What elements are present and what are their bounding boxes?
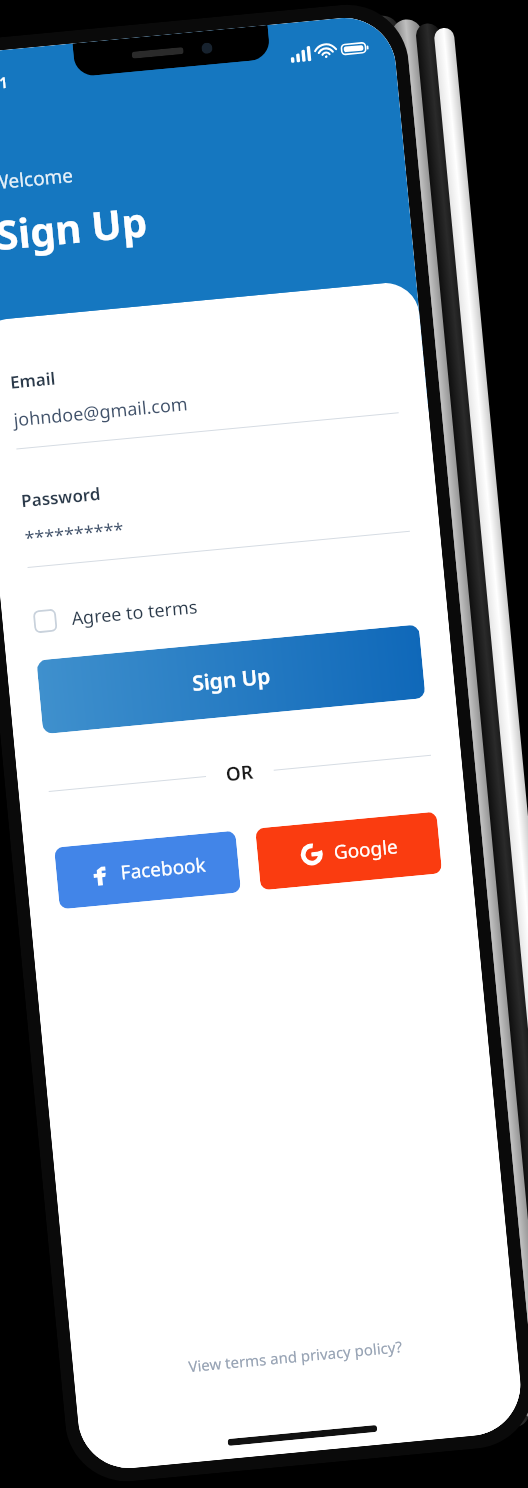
button[interactable]: View terms and privacy policy? [103, 1328, 495, 1470]
staticText: Agree to terms [70, 594, 199, 631]
staticText: Facebook [119, 851, 207, 885]
staticText: Google [332, 833, 400, 865]
staticText: Welcome [0, 162, 75, 196]
button[interactable]: Sign Up [36, 624, 426, 734]
staticText: johndoe@gmail.com [12, 391, 189, 433]
staticText: Sign Up [0, 193, 150, 261]
staticText: OR [225, 759, 255, 787]
staticText: Email [9, 366, 57, 394]
staticText: 9:41 [0, 72, 9, 94]
button[interactable]: Password [20, 453, 410, 568]
button[interactable]: Google [255, 811, 442, 890]
staticText: ********** [24, 517, 125, 551]
button[interactable]: Email [9, 335, 399, 449]
button[interactable]: Facebook [54, 831, 241, 909]
button[interactable]: Agree to terms [31, 590, 200, 639]
staticText: Sign Up [191, 662, 272, 698]
staticText: View terms and privacy policy? [187, 1336, 403, 1376]
staticText: Password [20, 482, 102, 512]
